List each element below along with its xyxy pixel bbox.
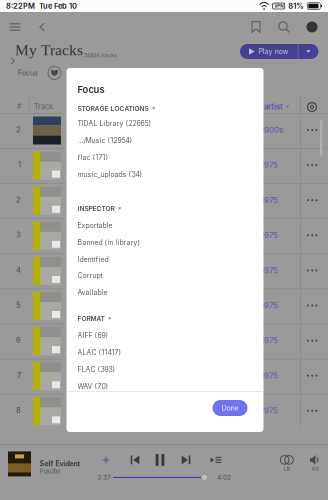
- staticText: flac (171): [77, 153, 108, 162]
- staticText: Identified: [77, 255, 108, 264]
- button[interactable]: Corrupt: [77, 267, 274, 284]
- staticText: 2: [16, 125, 21, 134]
- button[interactable]: 3: [0, 218, 328, 253]
- staticText: 40: [311, 465, 318, 472]
- staticText: e 1975: [254, 265, 278, 275]
- button[interactable]: Zones: [276, 455, 298, 472]
- staticText: 6: [16, 336, 21, 345]
- button[interactable]: Profile: [303, 18, 321, 36]
- staticText: 7: [17, 371, 21, 380]
- button[interactable]: AIFF (69): [77, 327, 274, 344]
- button[interactable]: um artist: [250, 102, 298, 111]
- staticText: Play now: [259, 47, 289, 56]
- staticText: Self Evident: [39, 459, 79, 468]
- button[interactable]: Favorites: [48, 66, 61, 79]
- staticText: .../Music (12954): [77, 136, 132, 145]
- staticText: #: [17, 102, 21, 110]
- button[interactable]: flac (171): [77, 149, 274, 166]
- staticText: 1: [18, 160, 21, 169]
- button[interactable]: Previous: [127, 453, 143, 467]
- button[interactable]: Queue: [208, 453, 224, 467]
- staticText: Available: [77, 288, 107, 297]
- button[interactable]: Volume: [304, 455, 326, 472]
- button[interactable]: Focus: [7, 66, 42, 80]
- staticText: Tue Feb 10: [35, 1, 77, 11]
- button[interactable]: STORAGE LOCATIONS: [77, 100, 274, 117]
- button[interactable]: Track: [34, 102, 74, 111]
- staticText: Corrupt: [77, 271, 102, 280]
- button[interactable]: ALAC (11417): [77, 344, 274, 361]
- button[interactable]: Menu: [5, 18, 25, 36]
- staticText: 3:37: [97, 473, 111, 481]
- staticText: FLAC (393): [77, 365, 115, 374]
- button[interactable]: music_uploads (34): [77, 166, 274, 183]
- staticText: e 1975: [254, 336, 278, 345]
- staticText: Done: [221, 404, 238, 412]
- button[interactable]: Available: [77, 284, 274, 301]
- button[interactable]: 5: [0, 288, 328, 324]
- staticText: 4: [16, 265, 21, 274]
- staticText: um artist: [250, 102, 283, 111]
- button[interactable]: .../Music (12954): [77, 132, 274, 149]
- staticText: My Tracks: [15, 41, 83, 59]
- staticText: TIDAL Library (22665): [77, 119, 151, 128]
- staticText: 2: [16, 195, 21, 204]
- button[interactable]: TIDAL Library (22665): [77, 115, 274, 132]
- button[interactable]: 6: [0, 324, 328, 359]
- button[interactable]: Column settings: [304, 99, 320, 115]
- staticText: Focus: [77, 84, 104, 95]
- staticText: e 1900s: [254, 125, 283, 135]
- staticText: 8:22PM: [6, 1, 35, 11]
- button[interactable]: 2: [0, 113, 328, 148]
- button[interactable]: FORMAT: [77, 310, 274, 327]
- button[interactable]: INSPECTOR: [77, 200, 274, 217]
- button[interactable]: 2: [0, 183, 328, 218]
- staticText: INSPECTOR: [77, 204, 114, 212]
- staticText: 5: [16, 300, 21, 309]
- staticText: AIFF (69): [77, 331, 108, 340]
- staticText: ALAC (11417): [77, 348, 121, 357]
- staticText: Banned (in library): [77, 238, 140, 247]
- staticText: STORAGE LOCATIONS: [77, 104, 148, 112]
- button[interactable]: FLAC (393): [77, 361, 274, 378]
- staticText: Focus: [18, 69, 38, 77]
- button[interactable]: Pause: [152, 453, 168, 467]
- button[interactable]: 8: [0, 394, 328, 429]
- button[interactable]: Shuffle: [99, 453, 113, 467]
- button[interactable]: 1: [0, 148, 328, 183]
- button[interactable]: Search: [275, 18, 293, 36]
- staticText: Track: [34, 102, 53, 111]
- button[interactable]: WAV (70): [77, 378, 274, 395]
- staticText: WAV (70): [77, 382, 108, 391]
- button[interactable]: Back: [33, 18, 51, 36]
- button[interactable]: Next: [178, 453, 194, 467]
- staticText: 81%: [288, 1, 304, 11]
- button[interactable]: Identified: [77, 251, 274, 268]
- staticText: Exportable: [77, 221, 112, 230]
- button[interactable]: Done: [212, 400, 247, 416]
- staticText: e 1975: [254, 160, 278, 170]
- button[interactable]: Play now: [240, 44, 318, 59]
- staticText: FORMAT: [77, 314, 104, 322]
- staticText: music_uploads (34): [77, 170, 142, 179]
- staticText: e 1975: [254, 195, 278, 205]
- staticText: e 1975: [254, 230, 278, 240]
- staticText: 4:02: [217, 473, 231, 481]
- staticText: LR: [283, 465, 290, 472]
- staticText: e 1975: [254, 406, 278, 415]
- staticText: e 1975: [254, 371, 278, 380]
- staticText: Puscifer: [39, 468, 60, 475]
- button[interactable]: Bookmarks: [247, 18, 265, 36]
- staticText: 3: [16, 230, 21, 239]
- button[interactable]: Exportable: [77, 217, 274, 234]
- button[interactable]: Banned (in library): [77, 234, 274, 251]
- button[interactable]: 4: [0, 253, 328, 288]
- staticText: VPN: [274, 3, 283, 9]
- staticText: 8: [16, 406, 21, 415]
- button[interactable]: 7: [0, 359, 328, 394]
- staticText: 35824 tracks: [84, 52, 117, 58]
- staticText: e 1975: [254, 300, 278, 310]
- button[interactable]: Now playing artwork: [8, 451, 31, 476]
